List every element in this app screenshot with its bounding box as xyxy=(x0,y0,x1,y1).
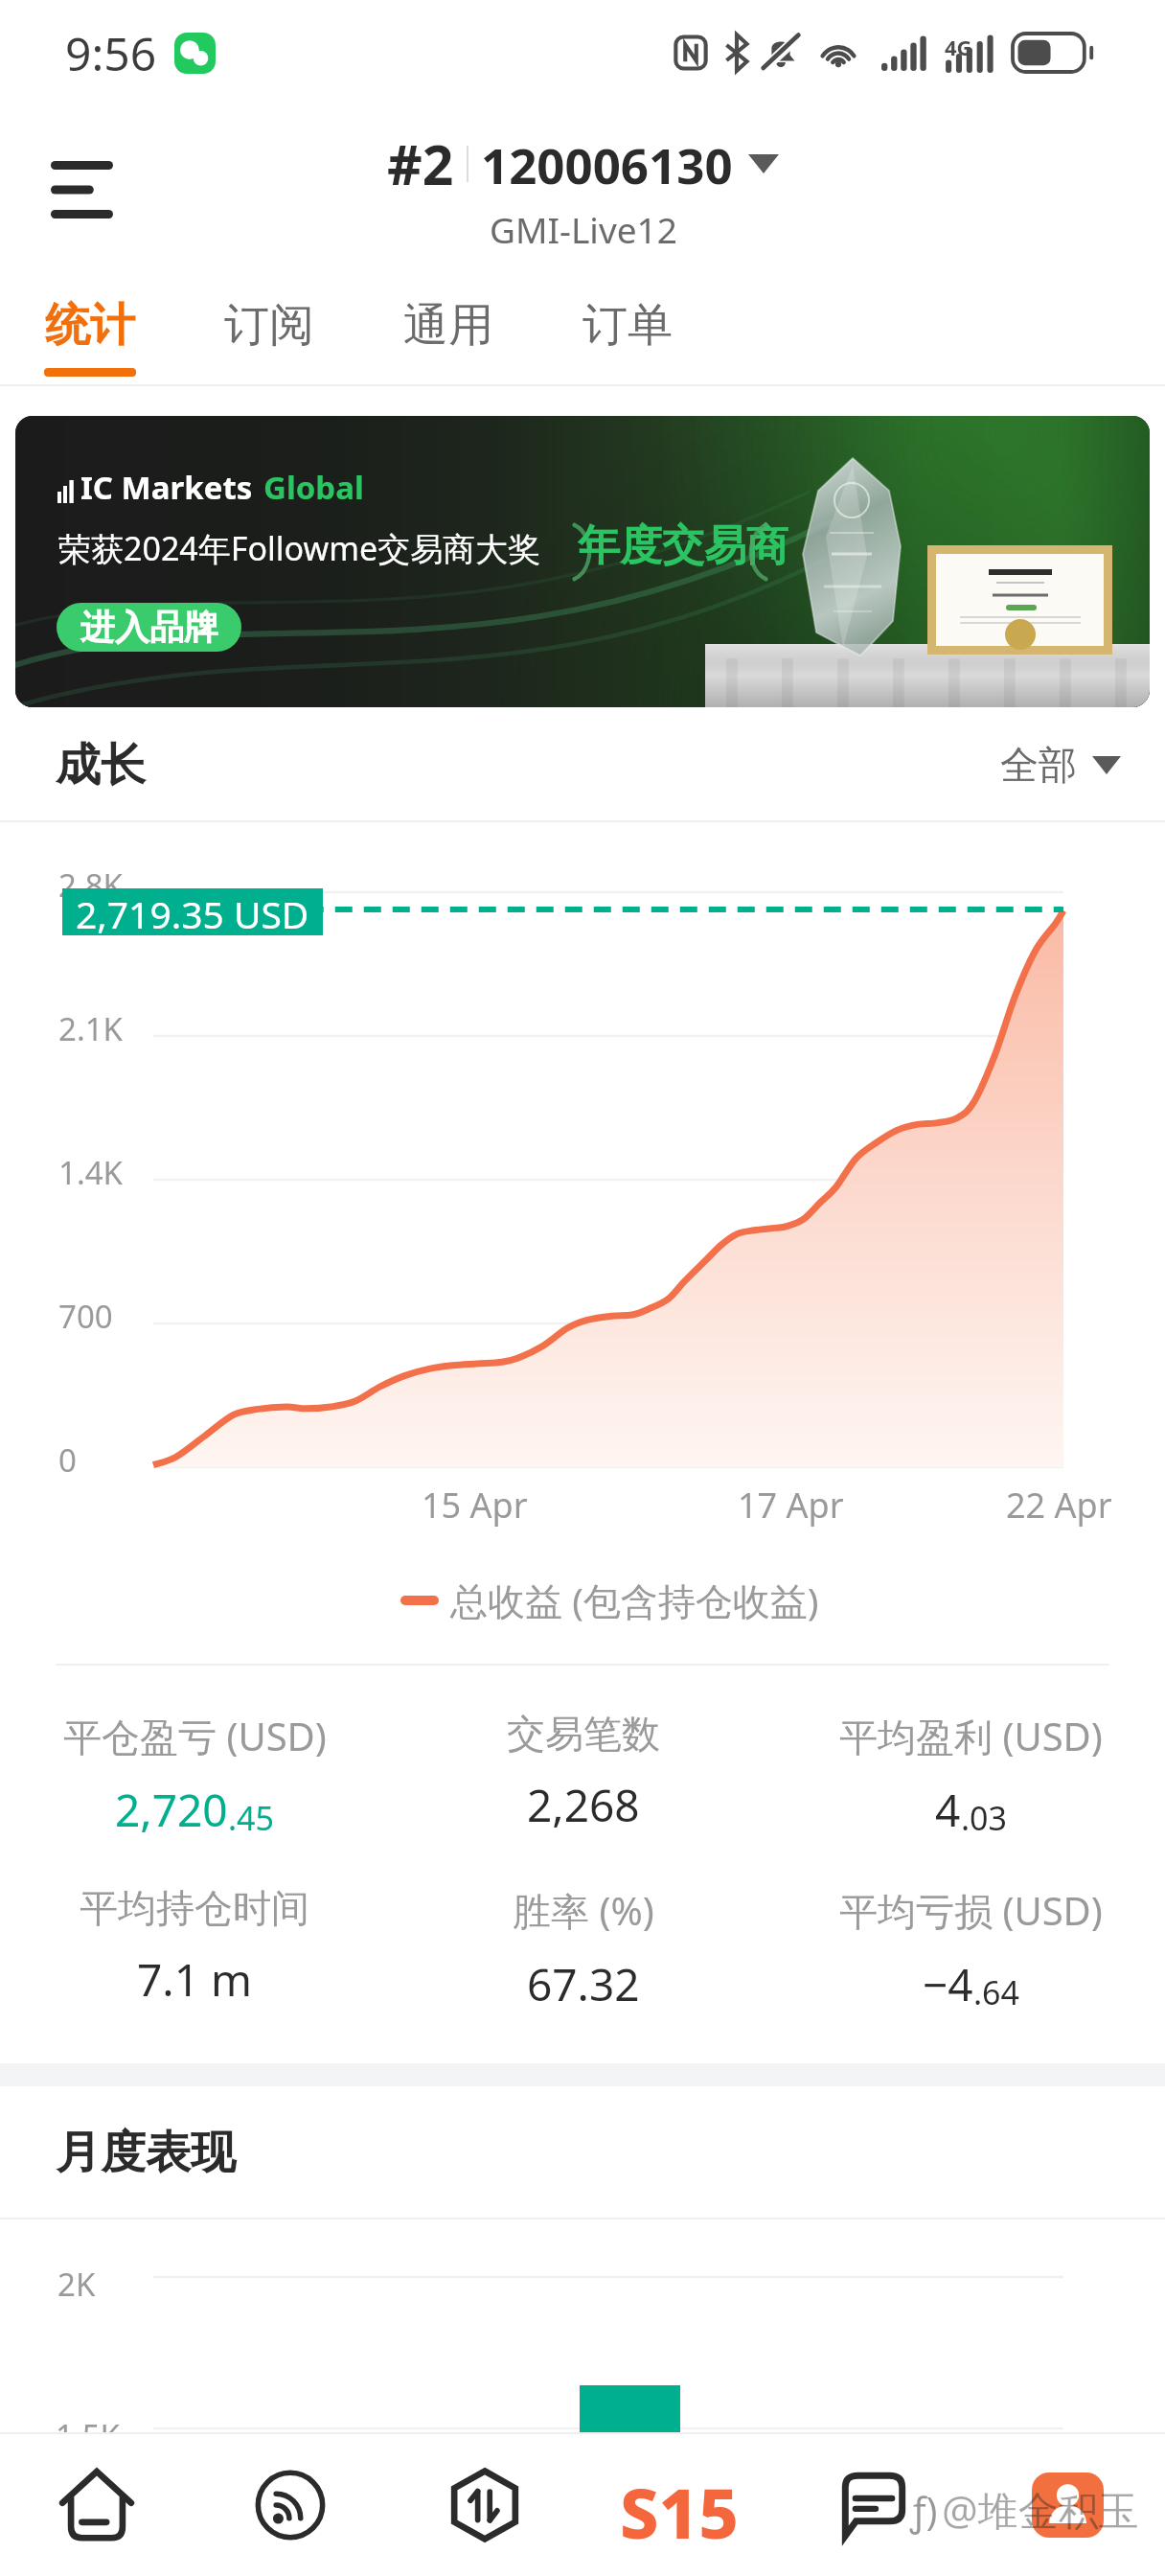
staticText: IC Markets xyxy=(80,466,253,509)
staticText: 22 Apr xyxy=(1006,1482,1112,1529)
staticText: 订单 xyxy=(582,297,673,354)
staticText: @堆金积玉 xyxy=(942,2482,1139,2537)
staticText: 0 xyxy=(58,1438,77,1482)
staticText: 成长 xyxy=(56,737,146,793)
staticText: ƒ) xyxy=(910,2484,938,2536)
staticText: 4 xyxy=(935,1780,961,1840)
staticText: #2 xyxy=(387,126,454,201)
button[interactable]: Home xyxy=(0,2465,194,2545)
staticText: GMI-Live12 xyxy=(490,205,677,253)
staticText: 1.4K xyxy=(58,1151,124,1194)
staticText: −4 xyxy=(923,1954,973,2014)
staticText: 2,719.35 USD xyxy=(76,888,309,935)
button[interactable]: 进入品牌 xyxy=(57,603,241,652)
staticText: 年度交易商 xyxy=(578,519,788,572)
button[interactable]: Menu xyxy=(20,128,143,251)
button[interactable]: Feed xyxy=(194,2465,387,2545)
staticText: Global xyxy=(263,466,364,509)
staticText: 荣获2024年Followme交易商大奖 xyxy=(58,526,541,570)
staticText: 总收益 (包含持仓收益) xyxy=(450,1575,819,1625)
staticText: 全部 xyxy=(1000,741,1077,789)
staticText: .64 xyxy=(973,1970,1020,2014)
staticText: 平均亏损 (USD) xyxy=(839,1884,1103,1937)
button[interactable]: 通用 xyxy=(358,259,537,386)
staticText: 平均持仓时间 xyxy=(80,1884,309,1932)
staticText: 2,268 xyxy=(527,1775,640,1835)
button[interactable]: IC Markets xyxy=(15,416,1150,707)
staticText: 7.1 m xyxy=(137,1949,252,2010)
staticText: 统计 xyxy=(45,297,135,354)
button[interactable]: #2 xyxy=(387,126,779,253)
staticText: 15 Apr xyxy=(422,1482,528,1529)
staticText: .03 xyxy=(961,1796,1008,1840)
staticText: 2.8K xyxy=(58,863,124,907)
button[interactable]: Profile xyxy=(971,2465,1165,2545)
staticText: S15 xyxy=(620,2465,739,2545)
staticText: 1.5K xyxy=(56,2414,121,2434)
staticText: 120006130 xyxy=(481,131,733,197)
staticText: 2K xyxy=(57,2263,96,2306)
button[interactable]: Messages xyxy=(776,2465,971,2545)
button[interactable]: 全部 xyxy=(1000,741,1121,789)
staticText: 平均盈利 (USD) xyxy=(839,1710,1103,1762)
staticText: 9:56 xyxy=(65,22,157,84)
staticText: 进入品牌 xyxy=(80,606,218,649)
button[interactable]: 订阅 xyxy=(179,259,358,386)
staticText: 67.32 xyxy=(527,1954,640,2014)
staticText: 交易笔数 xyxy=(507,1710,660,1758)
staticText: 订阅 xyxy=(224,297,314,354)
button[interactable]: Trade xyxy=(387,2465,582,2545)
staticText: .45 xyxy=(228,1796,275,1840)
staticText: 700 xyxy=(58,1295,113,1338)
button[interactable]: 订单 xyxy=(537,259,717,386)
staticText: 17 Apr xyxy=(738,1482,844,1529)
staticText: 通用 xyxy=(403,297,493,354)
staticText: 2.1K xyxy=(58,1007,124,1050)
staticText: 2,720 xyxy=(115,1780,228,1840)
staticText: 月度表现 xyxy=(56,2125,236,2181)
staticText: 胜率 (%) xyxy=(513,1884,654,1937)
staticText: 平仓盈亏 (USD) xyxy=(63,1710,327,1762)
staticText: 4G xyxy=(945,33,972,61)
button[interactable]: 统计 xyxy=(0,259,179,386)
button[interactable]: S15 xyxy=(582,2465,776,2545)
